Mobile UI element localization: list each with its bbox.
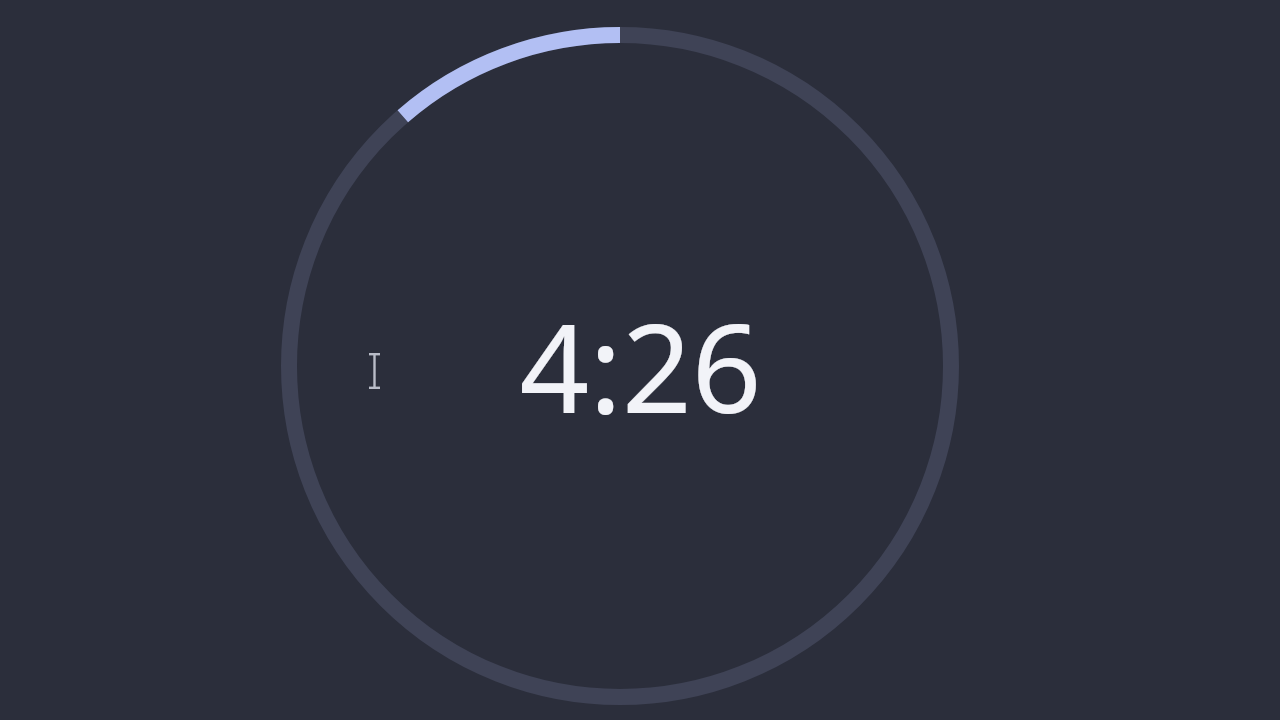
button[interactable]: Pause timer [293,19,987,713]
staticText: 4:26 [519,283,762,449]
